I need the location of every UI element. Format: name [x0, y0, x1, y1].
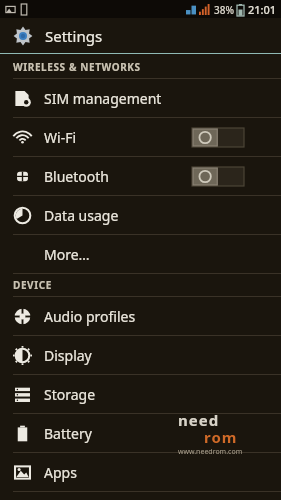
staticText: rom [204, 427, 238, 447]
staticText: Display [44, 346, 92, 365]
staticText: Audio profiles [44, 307, 136, 326]
staticText: DEVICE [13, 278, 52, 292]
staticText: SIM management [44, 89, 162, 108]
staticText: Wi-Fi [44, 128, 77, 147]
button[interactable]: Settings [0, 18, 281, 53]
staticText: WIRELESS & NETWORKS [13, 60, 141, 74]
button[interactable]: More… [0, 235, 281, 273]
staticText: More… [44, 245, 90, 264]
staticText: Bluetooth [44, 167, 109, 186]
staticText: Battery [44, 424, 92, 443]
staticText: Settings [45, 26, 103, 46]
button[interactable] [192, 167, 244, 186]
staticText: Apps [44, 463, 77, 482]
button[interactable]: SIM management [0, 79, 281, 117]
staticText: Data usage [44, 206, 119, 225]
button[interactable]: Battery [0, 414, 281, 452]
button[interactable]: Storage [0, 375, 281, 413]
staticText: Storage [44, 385, 96, 404]
button[interactable]: Wi-Fi [0, 118, 281, 156]
button[interactable]: Apps [0, 453, 281, 491]
staticText: need [178, 410, 220, 430]
button[interactable]: Data usage [0, 196, 281, 234]
staticText: 38% [214, 3, 234, 17]
button[interactable] [192, 128, 244, 147]
button[interactable]: Audio profiles [0, 297, 281, 335]
button[interactable]: Bluetooth [0, 157, 281, 195]
staticText: www.needrom.com [178, 447, 243, 457]
button[interactable]: Display [0, 336, 281, 374]
staticText: 21:01 [248, 2, 277, 17]
